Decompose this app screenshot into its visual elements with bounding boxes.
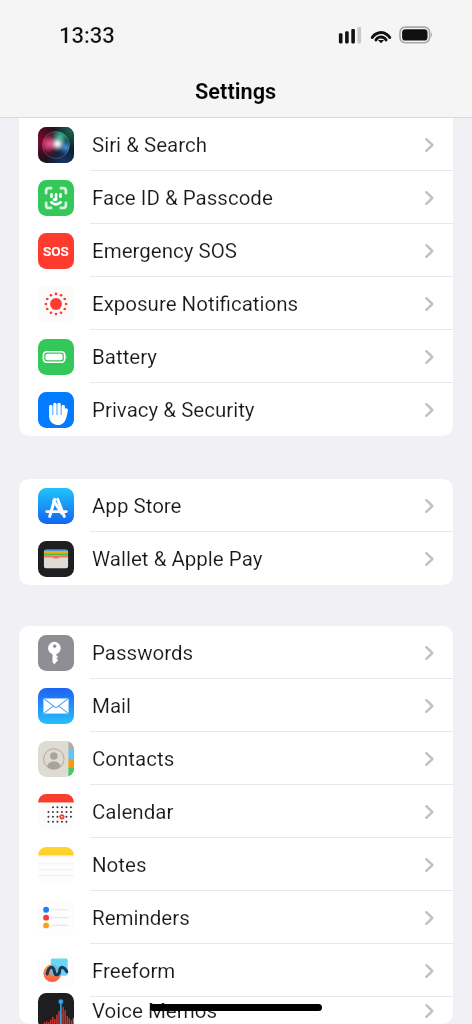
staticText: Voice Memos <box>92 999 217 1023</box>
button[interactable]: Mail <box>19 679 453 732</box>
staticText: Siri & Search <box>92 133 207 157</box>
staticText: Contacts <box>92 747 175 771</box>
button[interactable]: Face ID & Passcode <box>19 171 453 224</box>
button[interactable]: Contacts <box>19 732 453 785</box>
staticText: Mail <box>92 694 132 718</box>
staticText: Freeform <box>92 959 176 983</box>
staticText: Calendar <box>92 800 174 824</box>
button[interactable]: Siri & Search <box>19 118 453 171</box>
button[interactable]: Passwords <box>19 626 453 679</box>
button[interactable]: Notes <box>19 838 453 891</box>
staticText: App Store <box>92 494 182 518</box>
button[interactable]: Exposure Notifications <box>19 277 453 330</box>
staticText: Settings <box>195 79 277 104</box>
staticText: Face ID & Passcode <box>92 186 273 210</box>
staticText: 13:33 <box>59 23 115 49</box>
button[interactable]: Freeform <box>19 944 453 997</box>
staticText: Exposure Notifications <box>92 292 299 316</box>
staticText: Privacy & Security <box>92 398 255 422</box>
button[interactable]: Calendar <box>19 785 453 838</box>
button[interactable]: Battery <box>19 330 453 383</box>
button[interactable]: SOS <box>19 224 453 277</box>
staticText: Wallet & Apple Pay <box>92 547 263 571</box>
staticText: Battery <box>92 345 158 369</box>
staticText: Emergency SOS <box>92 239 237 263</box>
button[interactable]: Voice Memos <box>19 984 453 1024</box>
button[interactable]: Reminders <box>19 891 453 944</box>
staticText: Notes <box>92 853 147 877</box>
staticText: SOS <box>43 243 69 259</box>
button[interactable]: Wallet & Apple Pay <box>19 532 453 585</box>
button[interactable]: Privacy & Security <box>19 383 453 436</box>
staticText: Passwords <box>92 641 194 665</box>
button[interactable]: App Store <box>19 479 453 532</box>
staticText: Reminders <box>92 906 190 930</box>
